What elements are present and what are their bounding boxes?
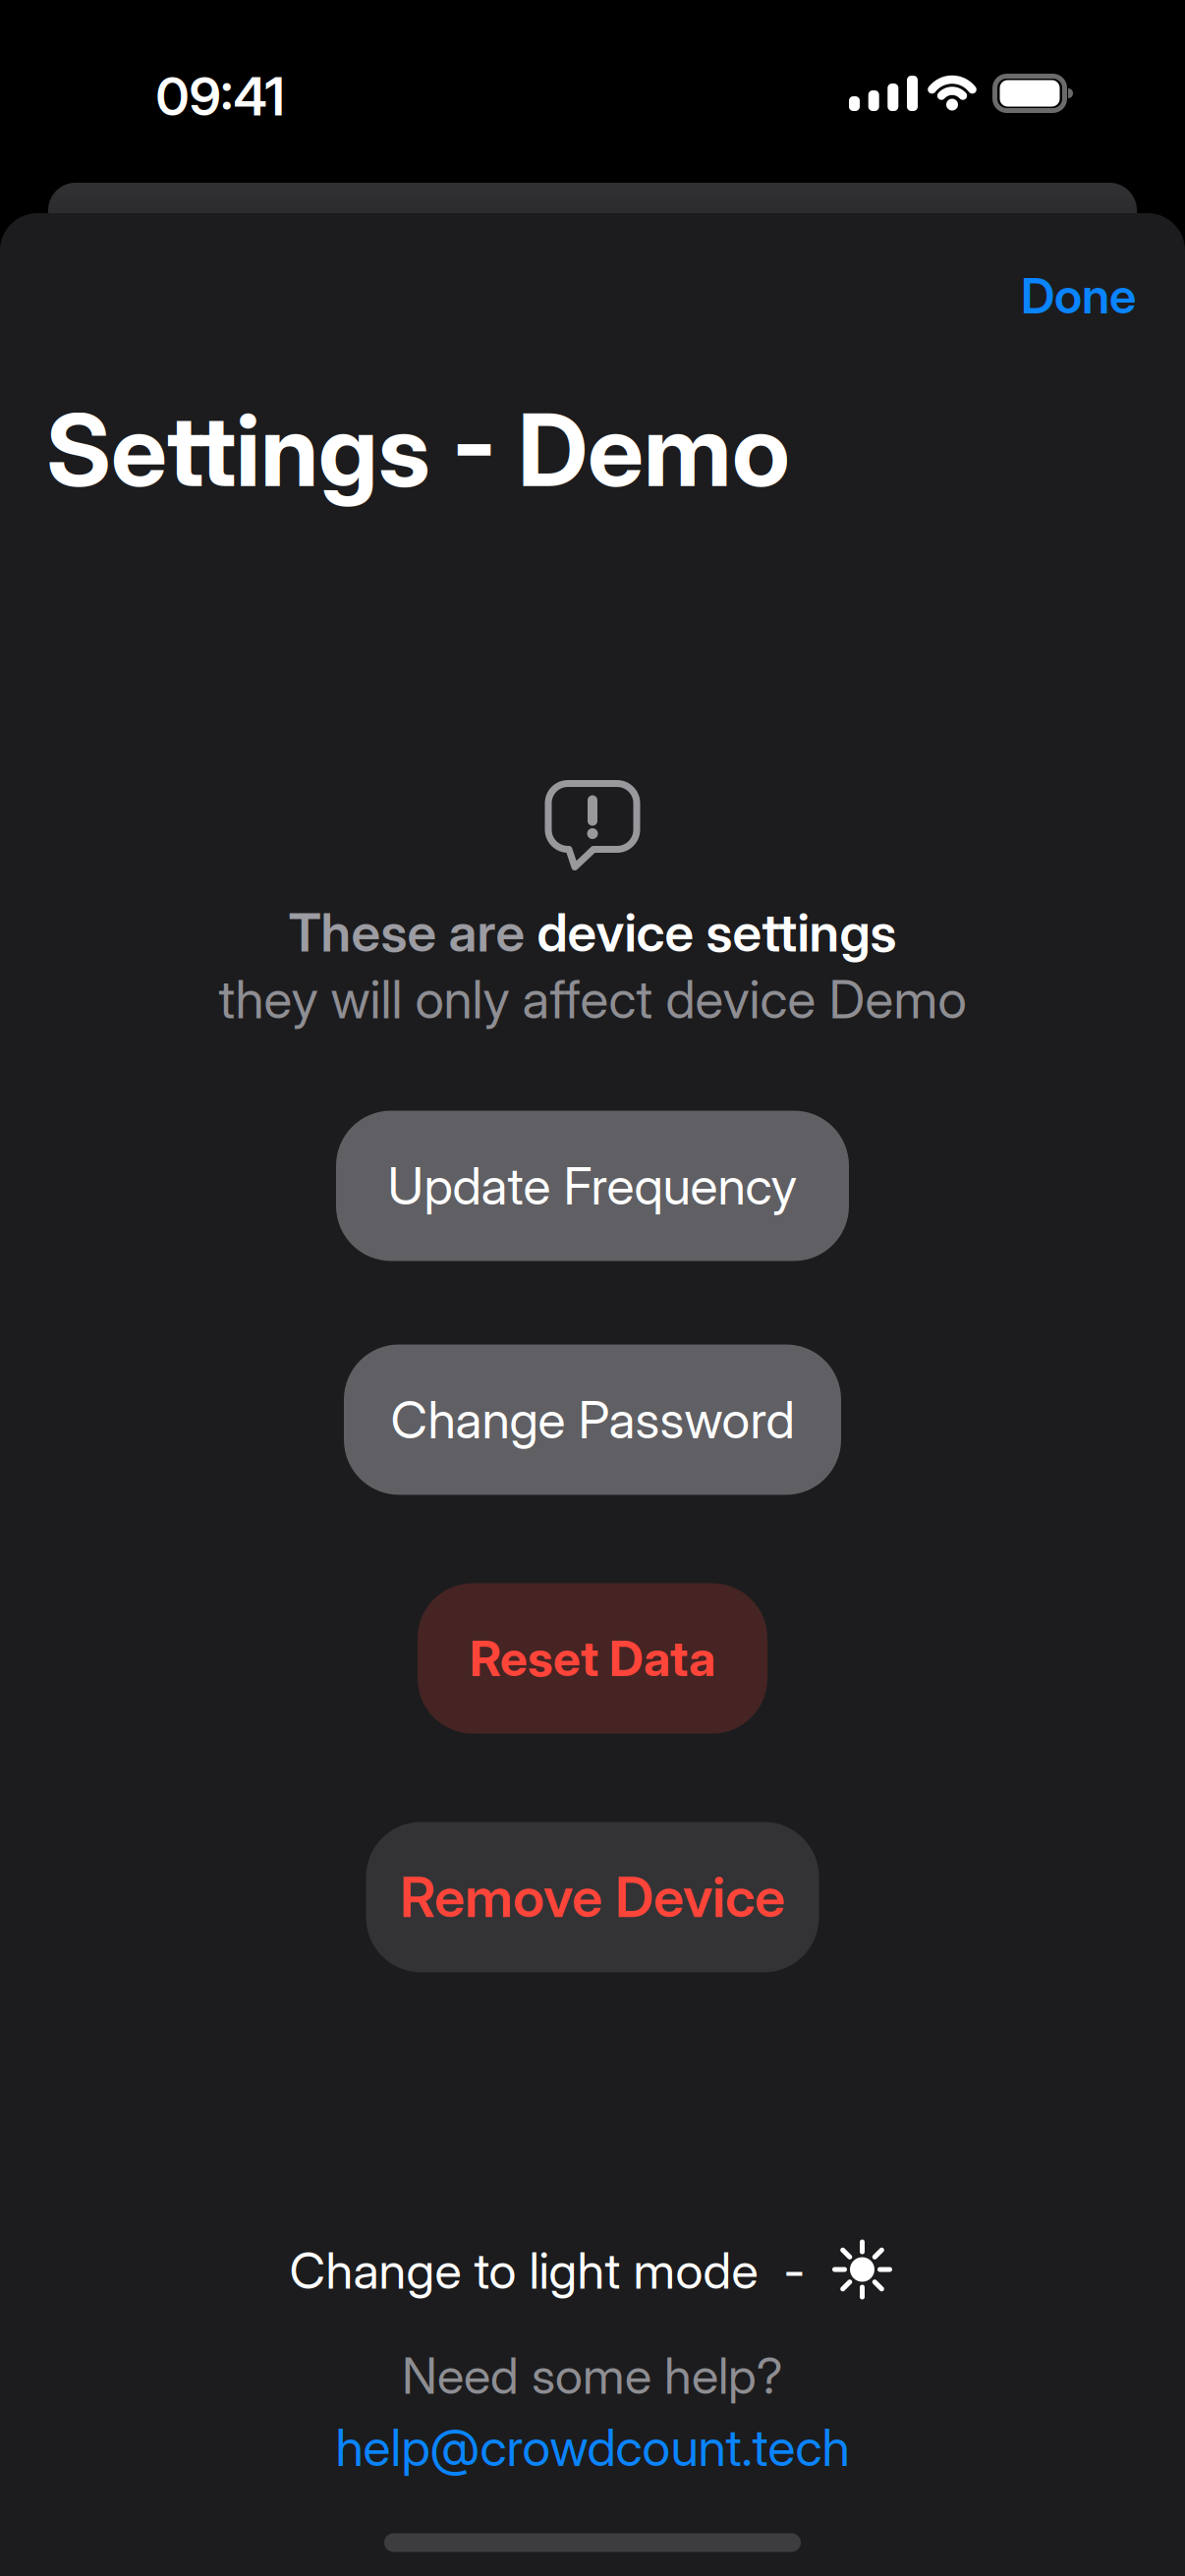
staticText: 09:41 — [156, 65, 284, 128]
button[interactable]: Change to light mode - — [289, 2238, 896, 2303]
staticText: Done — [1021, 266, 1136, 325]
staticText: help@crowdcount.tech — [336, 2416, 849, 2478]
button[interactable]: help@crowdcount.tech — [336, 2416, 849, 2478]
staticText: device settings — [537, 901, 897, 964]
staticText: Need some help? — [402, 2345, 783, 2406]
staticText: Change Password — [391, 1389, 794, 1450]
staticText: Remove Device — [400, 1864, 785, 1930]
button[interactable]: Done — [1021, 266, 1136, 325]
button[interactable]: Change Password — [344, 1344, 841, 1495]
button[interactable]: Reset Data — [418, 1583, 767, 1734]
staticText: Change to light mode - — [289, 2240, 831, 2301]
staticText: Update Frequency — [388, 1155, 797, 1217]
button[interactable]: Remove Device — [366, 1822, 819, 1972]
staticText: they will only affect device Demo — [219, 967, 966, 1031]
staticText: These are — [288, 901, 537, 964]
button[interactable]: Update Frequency — [336, 1111, 849, 1261]
staticText: Settings - Demo — [46, 390, 790, 510]
staticText: Reset Data — [470, 1629, 715, 1688]
